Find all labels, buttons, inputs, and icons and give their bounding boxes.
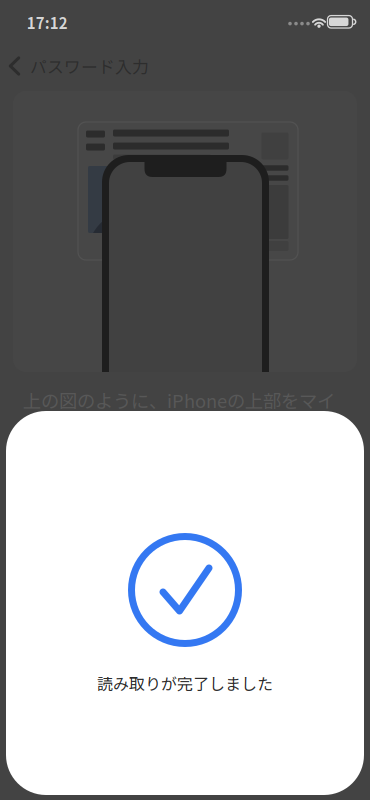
staticText: パスワード入力 [30,54,149,78]
staticText: 上の図のように、iPhoneの上部をマイ [23,387,335,413]
staticText: 17:12 [27,12,68,33]
button[interactable]: 戻る [0,43,163,89]
staticText: 読み取りが完了しました [97,671,273,695]
